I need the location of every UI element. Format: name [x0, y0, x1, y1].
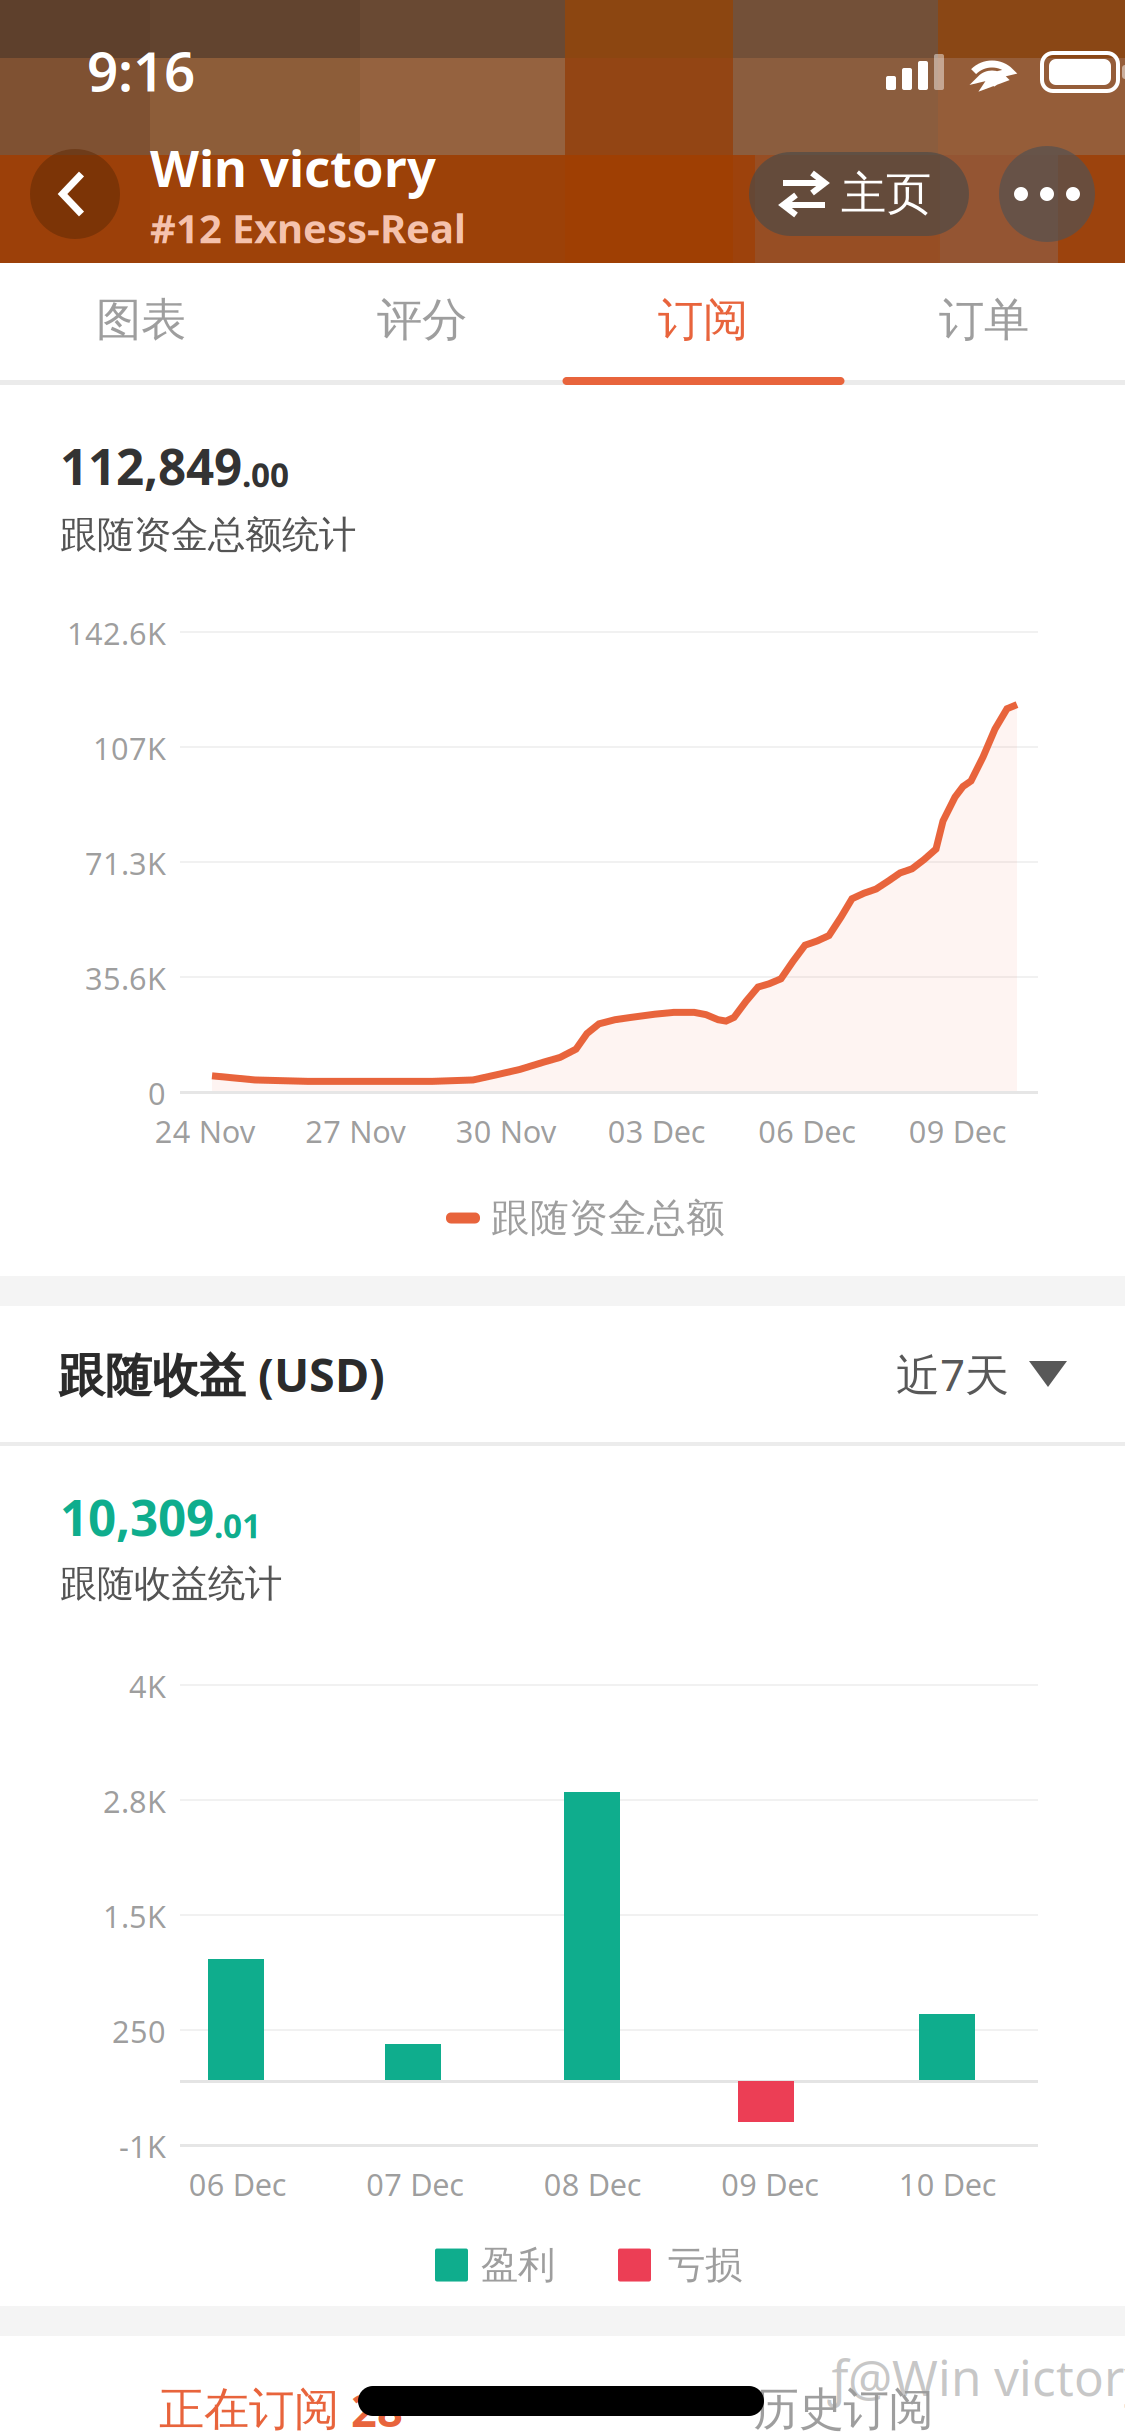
- staticText: 03 Dec: [608, 1111, 706, 1151]
- staticText: 盈利: [481, 2242, 555, 2288]
- button[interactable]: 主页: [749, 152, 969, 236]
- staticText: 112,849: [60, 433, 242, 498]
- staticText: 09 Dec: [721, 2164, 819, 2204]
- staticText: #12 Exness-Real: [150, 201, 466, 254]
- staticText: 跟随收益 (USD): [58, 1343, 385, 1405]
- staticText: 24 Nov: [155, 1111, 256, 1151]
- staticText: 07 Dec: [366, 2164, 464, 2204]
- staticText: 10 Dec: [899, 2164, 997, 2204]
- button[interactable]: 评分: [281, 263, 562, 386]
- staticText: 订单: [939, 292, 1029, 348]
- staticText: 9:16: [87, 34, 195, 107]
- staticText: -1K: [119, 2126, 166, 2166]
- staticText: 142.6K: [67, 613, 166, 653]
- button[interactable]: 订阅: [562, 263, 843, 386]
- button[interactable]: 订单: [843, 263, 1124, 386]
- staticText: 10,309: [60, 1484, 214, 1549]
- staticText: 2.8K: [103, 1781, 166, 1821]
- staticText: 08 Dec: [544, 2164, 642, 2204]
- staticText: 历史订阅: [753, 2382, 933, 2436]
- staticText: 跟随资金总额统计: [60, 512, 356, 558]
- button[interactable]: 正在订阅: [0, 2383, 562, 2436]
- staticText: 评分: [377, 292, 467, 348]
- staticText: 0: [148, 1073, 166, 1113]
- staticText: 28: [351, 2379, 403, 2436]
- staticText: 主页: [841, 166, 931, 222]
- staticText: 30 Nov: [456, 1111, 557, 1151]
- staticText: 订阅: [658, 292, 748, 348]
- staticText: 图表: [96, 292, 186, 348]
- staticText: .01: [214, 1503, 261, 1547]
- staticText: 35.6K: [85, 958, 166, 998]
- staticText: 跟随资金总额: [491, 1194, 725, 1242]
- staticText: .00: [242, 452, 289, 496]
- staticText: 09 Dec: [909, 1111, 1007, 1151]
- button[interactable]: 历史订阅: [562, 2383, 1125, 2436]
- staticText: 4K: [129, 1666, 166, 1706]
- staticText: 近7天: [896, 1345, 1009, 1403]
- staticText: 06 Dec: [758, 1111, 856, 1151]
- staticText: 107K: [93, 728, 166, 768]
- staticText: 71.3K: [85, 843, 166, 883]
- staticText: 亏损: [668, 2242, 742, 2288]
- button[interactable]: Back: [30, 149, 120, 239]
- staticText: 跟随收益统计: [60, 1561, 282, 1607]
- button[interactable]: 近7天: [896, 1339, 1067, 1409]
- staticText: ƒ@Win victory: [828, 2344, 1125, 2409]
- staticText: 06 Dec: [189, 2164, 287, 2204]
- staticText: 正在订阅: [159, 2382, 339, 2436]
- button[interactable]: More options: [999, 146, 1095, 242]
- button[interactable]: 图表: [0, 263, 281, 386]
- staticText: 250: [112, 2011, 166, 2051]
- staticText: Win victory: [150, 134, 436, 201]
- staticText: 1.5K: [103, 1896, 166, 1936]
- staticText: 27 Nov: [305, 1111, 406, 1151]
